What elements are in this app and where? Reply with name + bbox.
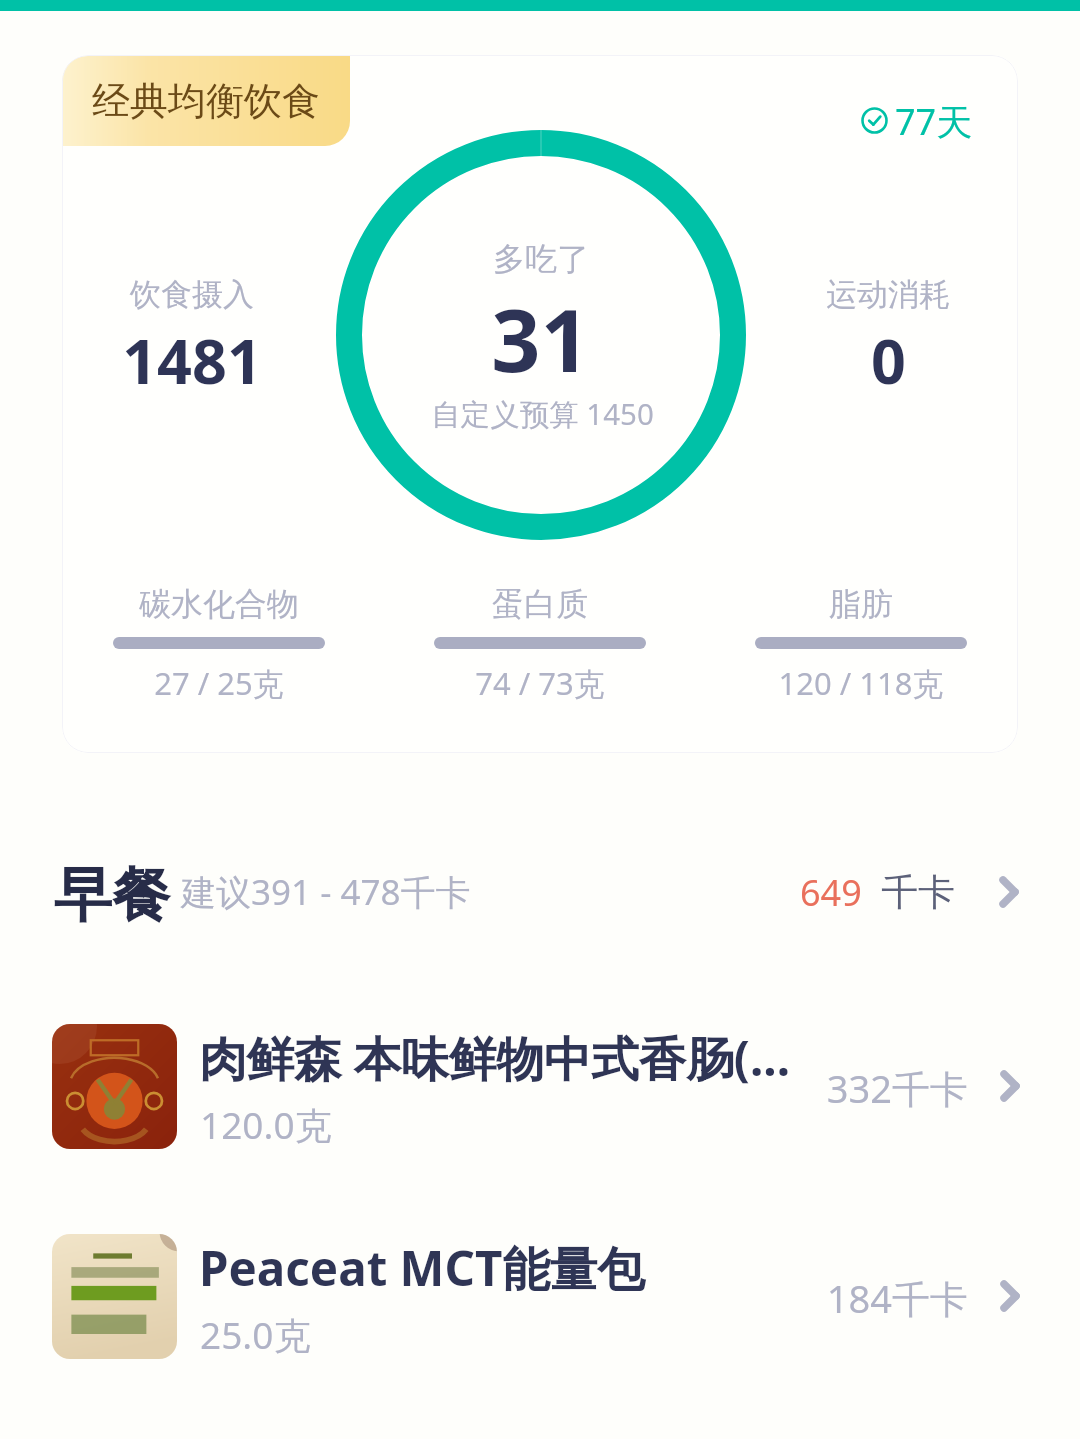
- other: Open details: [995, 1281, 1025, 1311]
- staticText: 31: [491, 280, 590, 397]
- staticText: 1481: [122, 319, 262, 402]
- staticText: 184千卡: [826, 1272, 968, 1324]
- staticText: 649: [800, 868, 862, 917]
- button[interactable]: Peaceat MCT能量包: [0, 1216, 1080, 1378]
- staticText: 早餐: [54, 859, 170, 932]
- staticText: 0: [871, 319, 906, 402]
- staticText: 74 / 73克: [475, 662, 605, 704]
- button[interactable]: 肉鲜森 本味鲜物中式香肠(...: [0, 1006, 1080, 1168]
- staticText: 120 / 118克: [778, 662, 944, 704]
- other: Streak days: [861, 107, 888, 134]
- staticText: 碳水化合物: [139, 584, 299, 624]
- staticText: Peaceat MCT能量包: [199, 1235, 645, 1300]
- staticText: 建议391 - 478千卡: [181, 868, 471, 916]
- staticText: 120.0克: [200, 1099, 332, 1150]
- staticText: 运动消耗: [826, 275, 950, 314]
- staticText: 饮食摄入: [130, 275, 254, 314]
- staticText: 千卡: [881, 869, 955, 916]
- staticText: 332千卡: [826, 1062, 968, 1114]
- staticText: 自定义预算 1450: [431, 393, 654, 433]
- staticText: 25.0克: [200, 1309, 311, 1360]
- button[interactable]: 经典均衡饮食: [62, 56, 350, 146]
- staticText: 肉鲜森 本味鲜物中式香肠(...: [199, 1025, 790, 1090]
- button[interactable]: 经典均衡饮食: [62, 55, 1018, 753]
- staticText: 27 / 25克: [154, 662, 284, 704]
- staticText: 经典均衡饮食: [92, 77, 320, 125]
- other: Open details: [995, 1071, 1025, 1101]
- button[interactable]: 早餐: [0, 822, 1080, 964]
- staticText: 77天: [895, 97, 973, 146]
- button[interactable]: Streak days: [846, 55, 1018, 190]
- staticText: 脂肪: [829, 584, 893, 624]
- staticText: 多吃了: [493, 239, 589, 279]
- staticText: 蛋白质: [492, 584, 588, 624]
- other: Open details: [994, 877, 1024, 907]
